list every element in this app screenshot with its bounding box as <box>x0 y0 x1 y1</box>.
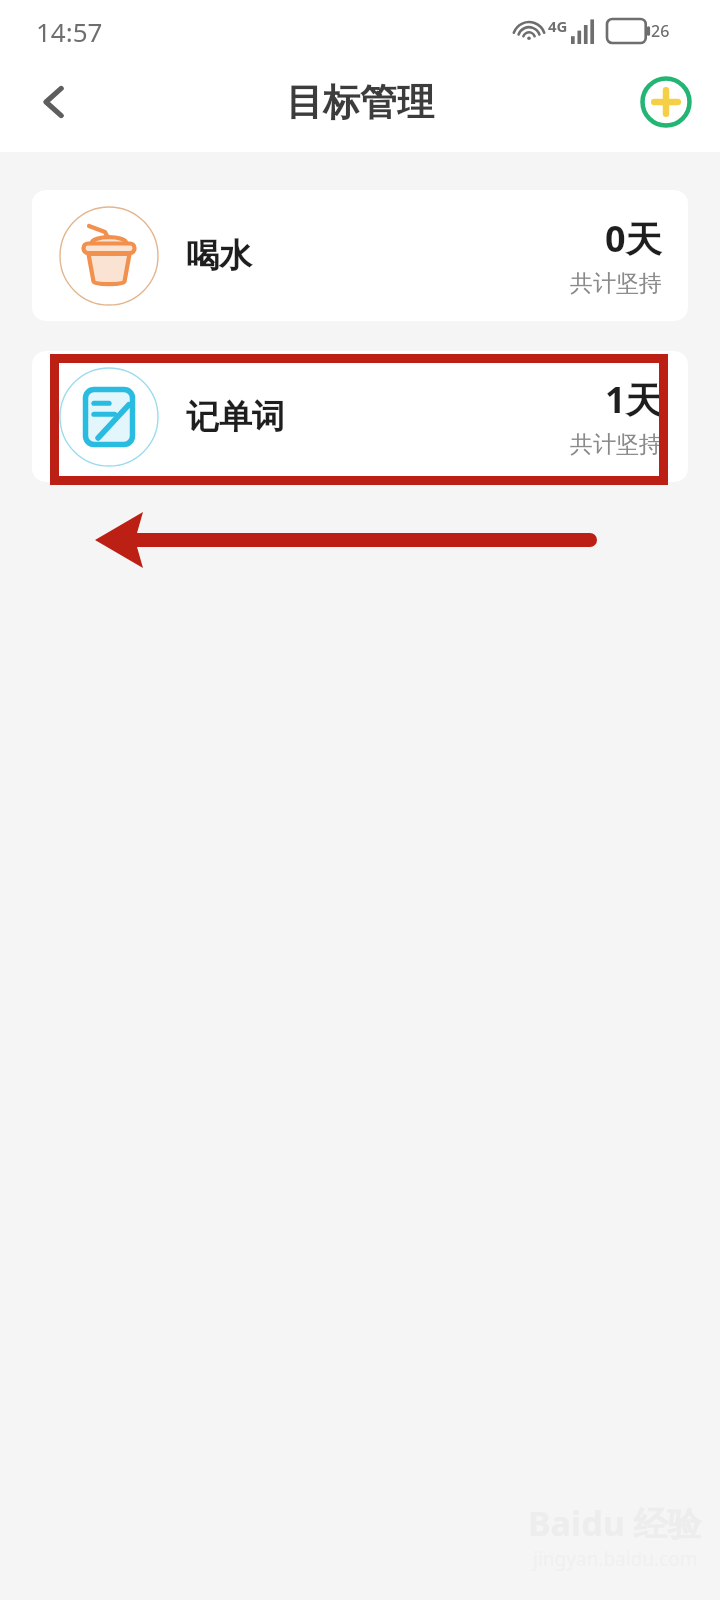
button[interactable]: 记单词 <box>32 351 688 482</box>
staticText: 26 <box>651 20 670 42</box>
staticText: 共计坚持 <box>570 269 662 298</box>
staticText: 喝水 <box>186 235 252 277</box>
button[interactable]: 喝水 <box>32 190 688 321</box>
staticText: 0天 <box>605 214 662 263</box>
staticText: 14:57 <box>36 14 103 49</box>
staticText: 4G <box>548 16 568 36</box>
staticText: 目标管理 <box>286 79 434 126</box>
button[interactable]: Back <box>18 66 90 138</box>
staticText: 记单词 <box>186 396 285 438</box>
button[interactable]: Add goal <box>634 70 698 134</box>
staticText: Baidu 经验 <box>528 1500 702 1546</box>
staticText: 共计坚持 <box>570 430 662 459</box>
staticText: 1天 <box>605 375 662 424</box>
